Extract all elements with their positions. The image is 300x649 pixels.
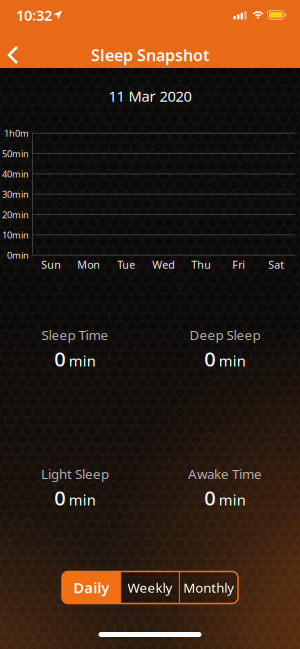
staticText: Deep Sleep	[189, 326, 260, 344]
staticText: Sun	[41, 257, 61, 272]
staticText: 0	[204, 485, 215, 511]
staticText: 30min	[2, 188, 29, 200]
staticText: 0	[54, 485, 65, 511]
staticText: Tue	[117, 257, 135, 272]
staticText: 50min	[2, 147, 29, 160]
staticText: 20min	[2, 208, 29, 221]
staticText: Thu	[191, 257, 211, 272]
staticText: 1h0m	[4, 127, 29, 139]
staticText: 10min	[2, 229, 29, 241]
button[interactable]: Daily	[62, 571, 121, 603]
staticText: 40min	[2, 168, 29, 180]
staticText: 0	[204, 346, 215, 372]
staticText: min	[219, 490, 246, 510]
staticText: min	[219, 351, 246, 371]
staticText: min	[69, 351, 96, 371]
staticText: Mon	[77, 257, 100, 272]
staticText: 0	[54, 346, 65, 372]
staticText: 11 Mar 2020	[108, 86, 191, 106]
staticText: Sleep Snapshot	[91, 44, 209, 66]
button[interactable]: Weekly	[121, 571, 179, 603]
staticText: Light Sleep	[41, 465, 109, 483]
button[interactable]: Monthly	[179, 571, 238, 603]
staticText: Awake Time	[188, 465, 262, 483]
staticText: Sleep Time	[41, 326, 108, 344]
staticText: Wed	[152, 257, 175, 272]
staticText: Weekly	[128, 579, 173, 596]
staticText: 10:32	[16, 5, 52, 25]
staticText: Sat	[268, 257, 284, 272]
staticText: Fri	[232, 257, 245, 272]
staticText: min	[69, 490, 96, 510]
staticText: Daily	[73, 578, 109, 597]
button[interactable]: Back	[0, 36, 29, 74]
staticText: 0min	[7, 249, 29, 261]
staticText: Monthly	[183, 579, 234, 596]
